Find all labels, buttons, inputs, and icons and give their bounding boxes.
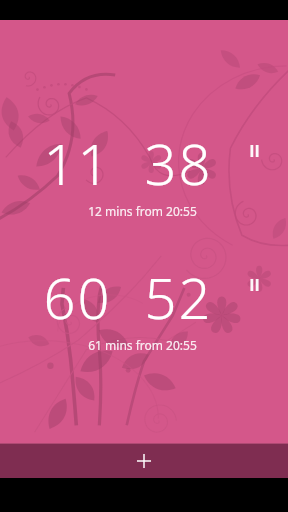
staticText: 11 38 <box>43 125 213 201</box>
button[interactable]: Pause timer <box>240 271 268 299</box>
button[interactable]: Pause timer <box>240 137 268 165</box>
staticText: 60 52 <box>43 259 213 335</box>
staticText: 61 mins from 20:55 <box>88 337 197 353</box>
button[interactable]: Add timer <box>0 443 288 478</box>
staticText: 12 mins from 20:55 <box>88 203 197 219</box>
